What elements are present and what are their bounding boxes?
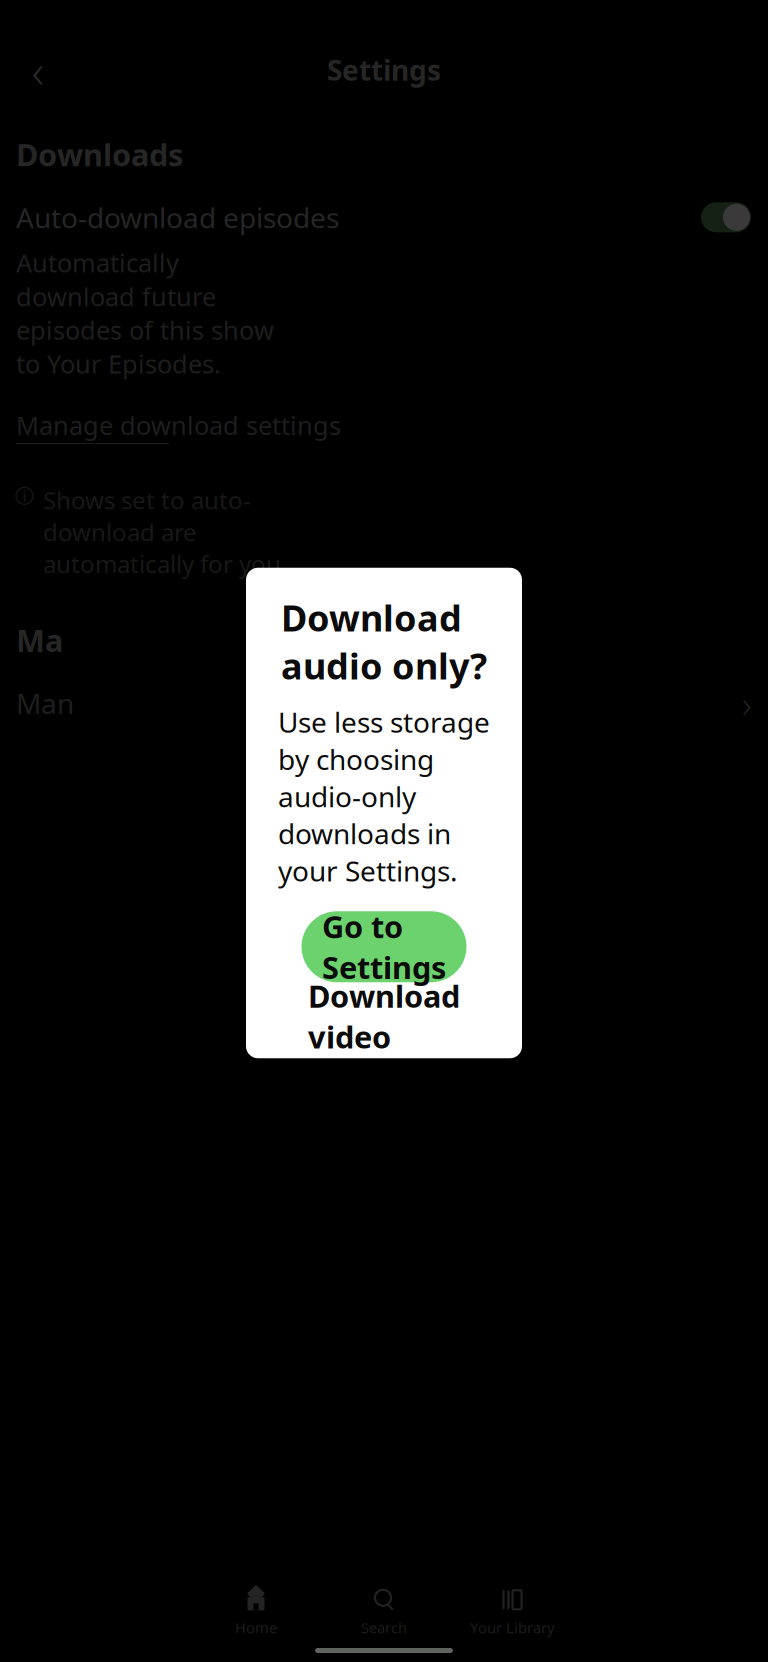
button[interactable]: Auto-download episodes toggle [700, 200, 752, 234]
staticText: Your Library [470, 1618, 554, 1637]
staticText: Go to Settings [322, 906, 446, 987]
button[interactable]: Home [192, 1586, 320, 1638]
button[interactable]: Search [320, 1586, 448, 1638]
button[interactable]: Download video [269, 996, 499, 1036]
staticText: Downloads [16, 134, 183, 175]
button[interactable]: Manage download settings [16, 408, 341, 444]
staticText: Shows set to auto-download are automatic… [43, 484, 287, 580]
staticText: Automatically download future episodes o… [16, 246, 274, 380]
staticText: Download audio only? [281, 594, 487, 689]
staticText: Download video [308, 975, 460, 1057]
button[interactable]: Your Library [448, 1586, 576, 1638]
staticText: Use less storage by choosing audio-only … [278, 703, 490, 889]
staticText: Manage download settings [16, 408, 341, 442]
staticText: Ma [16, 620, 63, 660]
button[interactable]: Go to Settings [301, 911, 466, 982]
staticText: Search [361, 1618, 407, 1637]
staticText: › [742, 678, 752, 728]
staticText: i [22, 486, 26, 506]
staticText: Man [16, 685, 74, 722]
button[interactable]: Back [16, 48, 60, 92]
staticText: Settings [327, 51, 441, 89]
staticText: ‹ [31, 38, 44, 102]
staticText: Home [235, 1618, 277, 1637]
staticText: Auto-download episodes [16, 199, 339, 236]
